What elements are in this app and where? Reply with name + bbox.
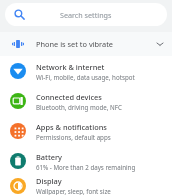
button[interactable]: Network & internet [0, 56, 172, 86]
staticText: 61% - More than 2 days remaining [36, 163, 136, 171]
button[interactable]: Expand [148, 32, 172, 56]
staticText: Search settings [60, 10, 112, 20]
staticText: Battery [36, 152, 62, 162]
button[interactable]: Connected devices [0, 86, 172, 116]
staticText: Wallpaper, sleep, font size [36, 187, 111, 195]
staticText: Bluetooth, driving mode, NFC [36, 103, 122, 111]
staticText: Connected devices [36, 92, 102, 102]
staticText: Network & internet [36, 62, 105, 72]
button[interactable]: Apps & notifications [0, 116, 172, 146]
button[interactable]: Display [0, 176, 172, 195]
staticText: Apps & notifications [36, 122, 107, 132]
staticText: Phone is set to vibrate [36, 39, 113, 49]
button[interactable]: Phone is set to vibrate [0, 32, 172, 56]
staticText: Permissions, default apps [36, 133, 111, 141]
button[interactable]: Battery [0, 146, 172, 176]
staticText: Wi-Fi, mobile, data usage, hotspot [36, 73, 135, 81]
button[interactable]: Search settings [5, 3, 167, 26]
staticText: Display [36, 176, 62, 186]
